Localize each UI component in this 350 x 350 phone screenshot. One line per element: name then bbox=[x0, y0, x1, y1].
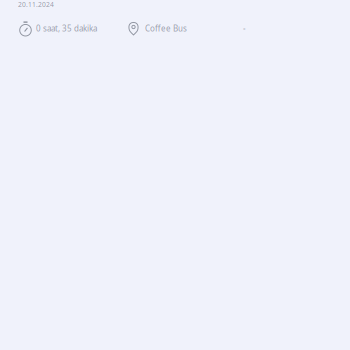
staticText: 0 saat, 35 dakika bbox=[36, 23, 97, 34]
staticText: - bbox=[243, 23, 246, 34]
staticText: 20.11.2024 bbox=[18, 0, 54, 9]
staticText: Coffee Bus bbox=[145, 23, 187, 34]
button[interactable]: 20.11.2024 bbox=[0, 0, 350, 42]
